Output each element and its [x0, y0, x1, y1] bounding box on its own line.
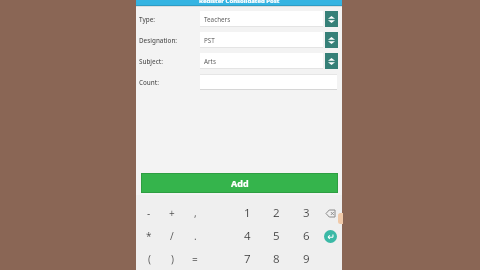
staticText: 6: [303, 228, 310, 244]
staticText: (: [148, 252, 151, 266]
button[interactable]: 1: [236, 203, 258, 223]
button[interactable]: =: [184, 249, 206, 269]
button[interactable]: -: [138, 203, 160, 223]
button[interactable]: Add: [142, 174, 337, 192]
staticText: 2: [273, 205, 280, 221]
staticText: Add: [231, 177, 249, 189]
button[interactable]: Open dropdown: [325, 11, 338, 27]
button[interactable]: Arts: [200, 53, 323, 69]
button[interactable]: 7: [236, 249, 258, 269]
staticText: Teachers: [204, 15, 231, 24]
button[interactable]: ,: [184, 203, 206, 223]
staticText: Arts: [204, 57, 216, 66]
staticText: *: [146, 229, 152, 243]
staticText: /: [170, 229, 174, 243]
button[interactable]: .: [184, 226, 206, 246]
button[interactable]: 4: [236, 226, 258, 246]
button[interactable]: *: [138, 226, 160, 246]
staticText: -: [147, 206, 151, 220]
button[interactable]: Enter: [319, 227, 341, 245]
button[interactable]: (: [138, 249, 160, 269]
button[interactable]: 8: [265, 249, 287, 269]
button[interactable]: Backspace: [319, 204, 341, 222]
staticText: .: [194, 229, 197, 243]
button[interactable]: Open dropdown: [325, 53, 338, 69]
staticText: Subject:: [139, 57, 163, 66]
staticText: ,: [194, 206, 197, 220]
staticText: +: [169, 206, 175, 220]
button[interactable]: [200, 74, 337, 90]
button[interactable]: ): [161, 249, 183, 269]
staticText: 3: [303, 205, 310, 221]
button[interactable]: 6: [295, 226, 317, 246]
staticText: Register Consolidated Post: [199, 0, 280, 3]
button[interactable]: 2: [265, 203, 287, 223]
button[interactable]: 3: [295, 203, 317, 223]
staticText: 9: [303, 251, 310, 267]
staticText: 5: [273, 228, 280, 244]
staticText: Type:: [139, 15, 155, 24]
staticText: 4: [244, 228, 251, 244]
staticText: Designation:: [139, 36, 178, 45]
staticText: =: [192, 252, 198, 266]
staticText: 1: [244, 205, 251, 221]
staticText: PST: [204, 36, 215, 45]
button[interactable]: 5: [265, 226, 287, 246]
staticText: 8: [273, 251, 280, 267]
button[interactable]: +: [161, 203, 183, 223]
button[interactable]: Teachers: [200, 11, 323, 27]
button[interactable]: /: [161, 226, 183, 246]
staticText: ): [171, 252, 174, 266]
staticText: 7: [244, 251, 251, 267]
button[interactable]: 9: [295, 249, 317, 269]
button[interactable]: Open dropdown: [325, 32, 338, 48]
staticText: Count:: [139, 78, 159, 87]
button[interactable]: PST: [200, 32, 323, 48]
